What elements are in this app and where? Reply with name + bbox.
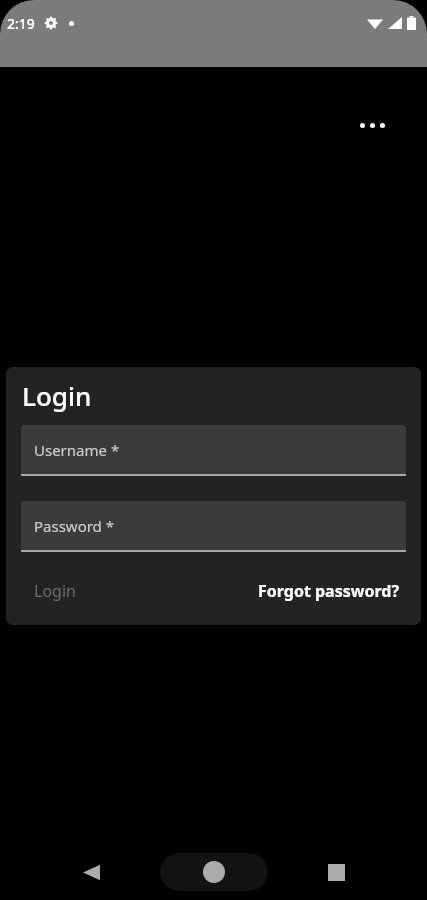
button[interactable]: Username * [21,425,406,476]
staticText: Username * [34,440,120,460]
button[interactable]: Home [190,844,238,900]
button[interactable]: Forgot password? [258,580,400,602]
button[interactable]: More options [348,101,396,149]
staticText: Login [22,378,92,413]
button[interactable]: Login [34,580,76,602]
staticText: Forgot password? [258,580,400,602]
staticText: 2:19 [7,14,35,33]
button[interactable]: Recent apps [312,844,360,900]
staticText: Login [34,580,76,602]
button[interactable]: Password * [21,501,406,552]
button[interactable]: Back [67,844,115,900]
staticText: Password * [34,516,115,536]
